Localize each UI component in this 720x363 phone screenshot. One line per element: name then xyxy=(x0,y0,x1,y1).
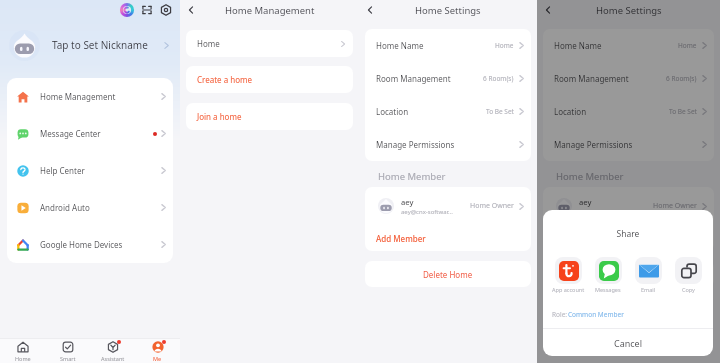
staticText: Delete Home xyxy=(423,269,473,280)
button[interactable]: Message Center xyxy=(7,115,173,152)
staticText: App account xyxy=(552,286,585,293)
button[interactable]: Back xyxy=(364,4,376,16)
staticText: Me xyxy=(153,355,162,362)
button[interactable]: Android Auto xyxy=(7,189,173,226)
staticText: Home Owner xyxy=(470,201,514,211)
staticText: Home Member xyxy=(556,170,624,183)
staticText: aey@cnx-softwar... xyxy=(401,208,453,216)
button[interactable]: Manage Permissions xyxy=(365,128,531,161)
staticText: Create a home xyxy=(197,74,253,85)
button[interactable]: Room Management xyxy=(543,62,714,95)
staticText: Join a home xyxy=(197,111,242,122)
button[interactable]: Add Member xyxy=(543,225,714,251)
staticText: Location xyxy=(376,106,409,117)
staticText: Messages xyxy=(595,286,621,293)
staticText: Share xyxy=(543,228,713,240)
staticText: Location xyxy=(554,106,587,117)
staticText: Home xyxy=(495,41,514,50)
staticText: Common Member xyxy=(568,310,624,319)
staticText: Tap to Set Nickname xyxy=(52,38,148,52)
staticText: Help Center xyxy=(40,165,85,176)
button[interactable]: AI assistant xyxy=(121,4,133,16)
button[interactable]: Home Name xyxy=(365,29,531,62)
button[interactable]: Home Name xyxy=(543,29,714,62)
button[interactable]: Google Home Devices xyxy=(7,226,173,263)
staticText: aey xyxy=(401,197,414,207)
button[interactable]: Delete Home xyxy=(365,261,531,287)
staticText: Copy xyxy=(682,286,695,293)
staticText: aey@cnx-softwar... xyxy=(579,208,631,216)
staticText: Message Center xyxy=(40,128,101,139)
button[interactable]: Add Member xyxy=(365,225,531,251)
button[interactable]: Scan xyxy=(141,4,153,16)
button[interactable]: Home xyxy=(0,339,45,363)
staticText: Home Owner xyxy=(653,201,697,211)
staticText: Email xyxy=(641,286,656,293)
staticText: Home Name xyxy=(376,40,424,51)
button[interactable]: App account xyxy=(548,257,588,293)
button[interactable]: Messages xyxy=(588,257,628,293)
staticText: Delete Home xyxy=(604,269,654,280)
button[interactable]: Join a home xyxy=(186,103,353,130)
button[interactable]: Email xyxy=(628,257,668,293)
staticText: Home xyxy=(197,38,220,49)
staticText: Role: xyxy=(552,310,568,319)
staticText: Home Settings xyxy=(596,4,662,17)
staticText: To Be Set xyxy=(486,107,514,116)
staticText: Manage Permissions xyxy=(376,139,455,150)
staticText: Android Auto xyxy=(40,202,90,213)
button[interactable]: Home xyxy=(186,30,353,57)
button[interactable]: Manage Permissions xyxy=(543,128,714,161)
staticText: 6 Room(s) xyxy=(483,74,514,83)
button[interactable]: Copy xyxy=(668,257,708,293)
staticText: Room Management xyxy=(554,73,629,84)
staticText: Home Management xyxy=(40,91,116,102)
staticText: aey xyxy=(579,197,592,207)
staticText: Home Member xyxy=(378,170,446,183)
button[interactable]: Back xyxy=(185,4,197,16)
staticText: Home Settings xyxy=(415,4,481,17)
staticText: Home Name xyxy=(554,40,602,51)
staticText: Assistant xyxy=(101,355,125,362)
staticText: 6 Room(s) xyxy=(666,74,697,83)
staticText: Room Management xyxy=(376,73,451,84)
button[interactable]: Back xyxy=(542,4,554,16)
staticText: Home xyxy=(15,355,31,362)
button[interactable]: Help Center xyxy=(7,152,173,189)
button[interactable]: Settings xyxy=(160,4,172,16)
button[interactable]: Tap to Set Nickname xyxy=(0,28,180,62)
staticText: Home xyxy=(678,41,697,50)
button[interactable]: Delete Home xyxy=(543,261,714,287)
staticText: Smart xyxy=(60,355,76,362)
staticText: Home Management xyxy=(225,4,315,17)
button[interactable]: Home Management xyxy=(7,78,173,115)
staticText: To Be Set xyxy=(669,107,697,116)
button[interactable]: aey xyxy=(365,187,531,225)
button[interactable]: Location xyxy=(543,95,714,128)
button[interactable]: aey xyxy=(543,187,714,225)
button[interactable]: Smart xyxy=(45,339,90,363)
staticText: Manage Permissions xyxy=(554,139,633,150)
button[interactable]: Assistant xyxy=(90,339,135,363)
button[interactable]: Location xyxy=(365,95,531,128)
button[interactable]: Me xyxy=(135,339,180,363)
staticText: Cancel xyxy=(614,337,643,349)
button[interactable]: Cancel xyxy=(543,329,713,356)
button[interactable]: Room Management xyxy=(365,62,531,95)
staticText: Add Member xyxy=(376,233,426,244)
button[interactable]: Create a home xyxy=(186,66,353,93)
staticText: Google Home Devices xyxy=(40,239,123,250)
